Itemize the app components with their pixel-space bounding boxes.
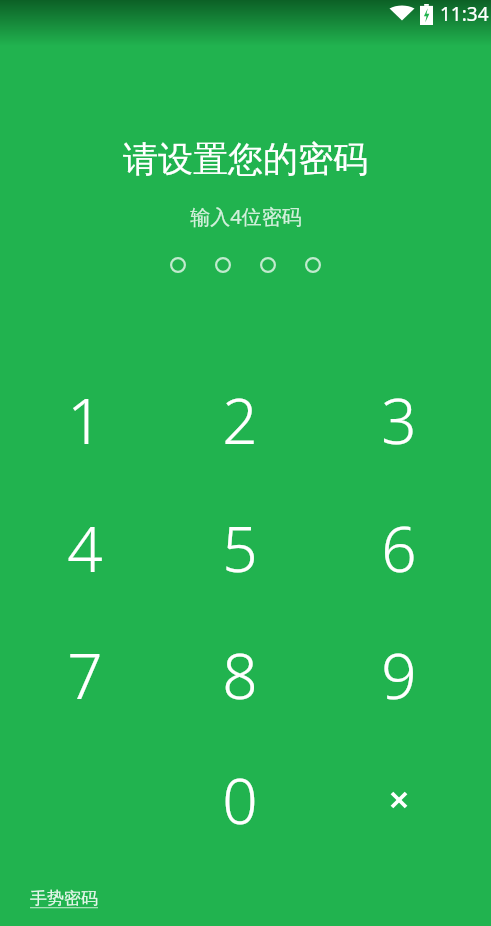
- staticText: 3: [381, 378, 417, 462]
- button[interactable]: 8: [165, 616, 315, 734]
- staticText: 11:34: [440, 1, 489, 27]
- staticText: 8: [222, 633, 258, 717]
- button[interactable]: 6: [324, 489, 474, 607]
- button[interactable]: 7: [10, 616, 160, 734]
- staticText: 7: [67, 633, 103, 717]
- button[interactable]: Delete: [324, 741, 474, 859]
- button[interactable]: 3: [324, 361, 474, 479]
- button[interactable]: 2: [165, 361, 315, 479]
- staticText: 0: [222, 758, 258, 842]
- staticText: 2: [222, 378, 258, 462]
- staticText: 9: [381, 633, 417, 717]
- staticText: 6: [381, 506, 417, 590]
- button[interactable]: 5: [165, 489, 315, 607]
- button[interactable]: 9: [324, 616, 474, 734]
- staticText: 1: [67, 378, 103, 462]
- button[interactable]: 0: [165, 741, 315, 859]
- staticText: 请设置您的密码: [123, 137, 368, 181]
- button[interactable]: 手势密码: [30, 886, 98, 911]
- staticText: 输入4位密码: [190, 203, 302, 230]
- staticText: 5: [222, 506, 258, 590]
- button[interactable]: 1: [10, 361, 160, 479]
- other: Wi-Fi: [389, 4, 415, 24]
- other: Battery charging: [420, 4, 433, 25]
- staticText: 手势密码: [30, 888, 98, 909]
- staticText: 4: [67, 506, 103, 590]
- button[interactable]: 4: [10, 489, 160, 607]
